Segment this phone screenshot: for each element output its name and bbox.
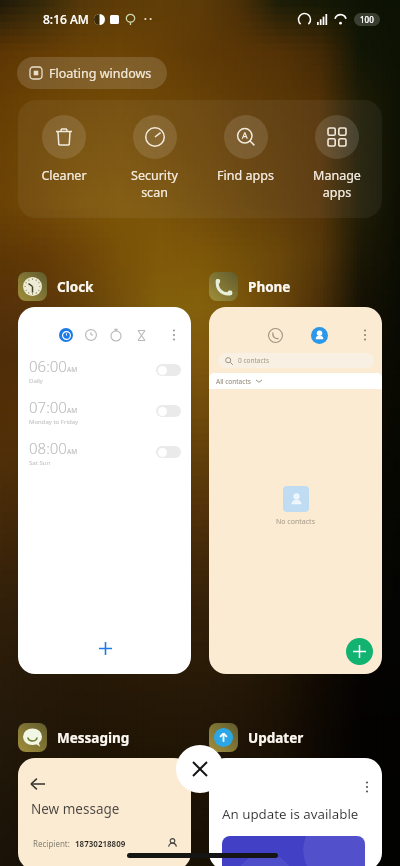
button[interactable]: Updater — [209, 723, 304, 752]
staticText: Phone — [248, 278, 291, 296]
staticText: 100 — [360, 14, 374, 25]
button[interactable]: Clock — [18, 272, 94, 301]
button[interactable]: Close — [176, 745, 224, 793]
button[interactable]: More options — [358, 778, 376, 796]
button[interactable]: 0 contacts — [218, 353, 374, 368]
button[interactable]: Messaging — [18, 723, 130, 752]
staticText: 18730218809 — [75, 838, 126, 849]
staticText: All contacts — [216, 377, 251, 386]
staticText: No contacts — [276, 517, 315, 527]
staticText: New message — [31, 800, 120, 818]
staticText: Messaging — [57, 729, 130, 747]
button[interactable]: Timer — [134, 328, 148, 342]
staticText: Security scan — [131, 167, 178, 200]
button[interactable]: Add contact — [346, 638, 373, 665]
staticText: 0 contacts — [238, 356, 270, 365]
staticText: Daily — [29, 377, 43, 385]
staticText: Recipient: — [33, 838, 70, 849]
button[interactable]: Clock — [84, 328, 98, 342]
staticText: 07:00 — [29, 397, 67, 417]
button[interactable]: Dialer — [267, 327, 284, 344]
staticText: Find apps — [217, 167, 274, 184]
button[interactable]: Phone — [209, 272, 291, 301]
staticText: Floating windows — [49, 65, 152, 82]
button[interactable]: Add alarm — [92, 635, 118, 661]
button[interactable]: Security scan — [109, 108, 200, 200]
staticText: Cleaner — [41, 167, 87, 184]
staticText: Monday to Friday — [29, 418, 79, 426]
button[interactable]: All contacts — [209, 373, 382, 389]
staticText: Manage apps — [313, 167, 361, 200]
button[interactable]: Alarm — [59, 328, 73, 342]
staticText: AM — [67, 447, 78, 456]
button[interactable]: 08:00 — [18, 437, 191, 467]
staticText: AM — [67, 406, 78, 415]
button[interactable]: More options — [356, 326, 374, 344]
button[interactable]: 07:00 — [18, 396, 191, 426]
button[interactable]: More options — [165, 326, 183, 344]
staticText: 8:16 AM — [43, 11, 89, 27]
staticText: An update is available — [222, 805, 359, 823]
button[interactable]: Cleaner — [18, 108, 109, 184]
button[interactable]: Contacts — [311, 327, 328, 344]
staticText: 06:00 — [29, 356, 67, 376]
staticText: Clock — [57, 278, 94, 296]
staticText: 08:00 — [29, 438, 67, 458]
staticText: Sat Sun — [29, 459, 51, 467]
button[interactable]: Floating windows — [17, 57, 167, 89]
staticText: AM — [67, 365, 78, 374]
button[interactable]: 06:00 — [18, 355, 191, 385]
button[interactable]: Back — [28, 774, 48, 794]
staticText: Updater — [248, 729, 304, 747]
button[interactable]: Manage apps — [291, 108, 382, 200]
button[interactable]: Choose contact — [165, 836, 179, 850]
button[interactable]: Stopwatch — [109, 328, 123, 342]
button[interactable]: Find apps — [200, 108, 291, 184]
